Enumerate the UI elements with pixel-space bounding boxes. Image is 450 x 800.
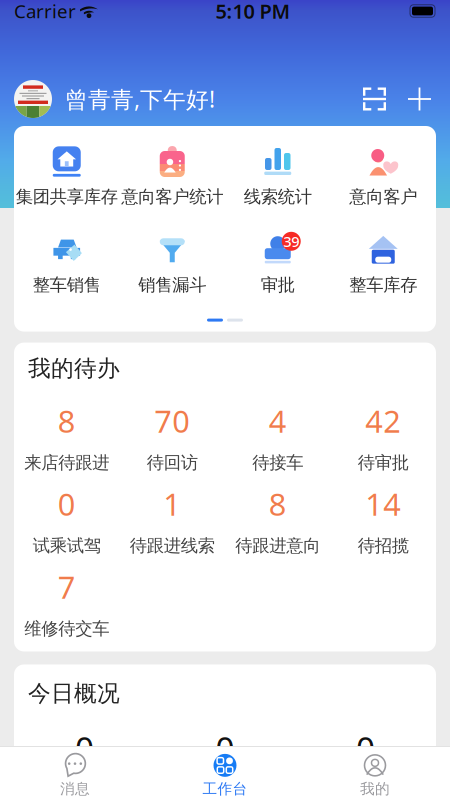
button[interactable]: 0 [14, 483, 119, 556]
button[interactable]: 新增 [401, 80, 438, 117]
staticText: 待招揽 [358, 535, 409, 556]
staticText: 70 [154, 400, 190, 441]
button[interactable]: 8 [225, 483, 330, 556]
staticText: 我的 [360, 780, 390, 798]
button[interactable]: 扫一扫 [356, 80, 393, 117]
staticText: 集团共享库存 [16, 186, 118, 207]
button[interactable]: 意向客户 [330, 146, 436, 207]
staticText: 0 [215, 726, 234, 771]
staticText: 整车销售 [33, 274, 101, 296]
staticText: 待审批 [358, 452, 409, 473]
staticText: 维修待交车 [24, 618, 109, 639]
staticText: 试乘试驾 [33, 535, 101, 556]
staticText: 曾青青,下午好! [65, 84, 215, 114]
staticText: 14 [365, 483, 401, 524]
staticText: 0 [75, 726, 94, 771]
button[interactable]: 销售漏斗 [119, 234, 225, 296]
staticText: 5:10 PM [215, 0, 290, 24]
staticText: Carrier [14, 0, 76, 23]
button[interactable]: 42 [330, 400, 436, 473]
button[interactable]: 集团共享库存 [14, 146, 119, 207]
staticText: 消息 [60, 780, 90, 798]
staticText: 审批 [261, 274, 295, 296]
button[interactable]: 7 [14, 566, 119, 639]
staticText: 42 [365, 400, 401, 441]
button[interactable]: 39 [225, 234, 330, 296]
staticText: 来店待跟进 [24, 452, 109, 473]
staticText: 意向客户 [349, 186, 417, 207]
button[interactable]: 整车销售 [14, 234, 119, 296]
staticText: 8 [58, 400, 76, 441]
staticText: 待跟进线索 [130, 535, 215, 556]
staticText: 整车库存 [349, 274, 417, 296]
staticText: 意向客户统计 [121, 186, 223, 207]
staticText: 线索统计 [244, 186, 312, 207]
staticText: 7 [58, 566, 76, 607]
button[interactable]: 4 [225, 400, 330, 473]
staticText: 待跟进意向 [235, 535, 320, 556]
staticText: 0 [58, 483, 76, 524]
staticText: 工作台 [202, 780, 247, 798]
button[interactable]: 消息 [0, 747, 150, 800]
button[interactable]: 8 [14, 400, 119, 473]
button[interactable]: 意向客户统计 [119, 146, 225, 207]
staticText: 待回访 [147, 452, 198, 473]
staticText: 今日概况 [28, 679, 120, 707]
button[interactable]: 14 [330, 483, 436, 556]
button[interactable]: 工作台 [150, 747, 300, 800]
button[interactable]: 整车库存 [330, 234, 436, 296]
staticText: 待接车 [252, 452, 303, 473]
button[interactable]: 我的 [300, 747, 450, 800]
staticText: 我的待办 [28, 355, 120, 382]
button[interactable]: 1 [119, 483, 225, 556]
staticText: 4 [269, 400, 287, 441]
button[interactable]: 线索统计 [225, 146, 330, 207]
staticText: 0 [356, 726, 375, 771]
staticText: 39 [283, 232, 299, 251]
staticText: 1 [163, 483, 181, 524]
staticText: 8 [269, 483, 287, 524]
button[interactable]: 70 [119, 400, 225, 473]
staticText: 销售漏斗 [138, 274, 206, 296]
